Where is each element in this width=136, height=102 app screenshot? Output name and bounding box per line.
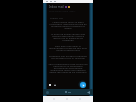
staticText: Inbox mail (49, 5, 64, 9)
staticText: Subject line (50, 16, 63, 19)
button[interactable]: Menu (46, 91, 49, 94)
staticText: Ut enim ad minim veniam quis nostrud exe… (48, 32, 88, 42)
staticText: Lorem ipsum dolor sit amet consectetur a… (48, 20, 88, 30)
staticText: Sed ut perspiciatis unde omnis iste natu… (48, 62, 88, 74)
button[interactable]: Send (78, 80, 87, 89)
button[interactable]: Camera (54, 84, 56, 86)
staticText: Excepteur sint occaecat cupidatat non pr… (48, 54, 88, 60)
button[interactable]: Back (87, 91, 90, 94)
staticText: Duis aute irure dolor in reprehenderit v… (48, 44, 88, 52)
staticText: from sender name <mail> (49, 10, 76, 13)
